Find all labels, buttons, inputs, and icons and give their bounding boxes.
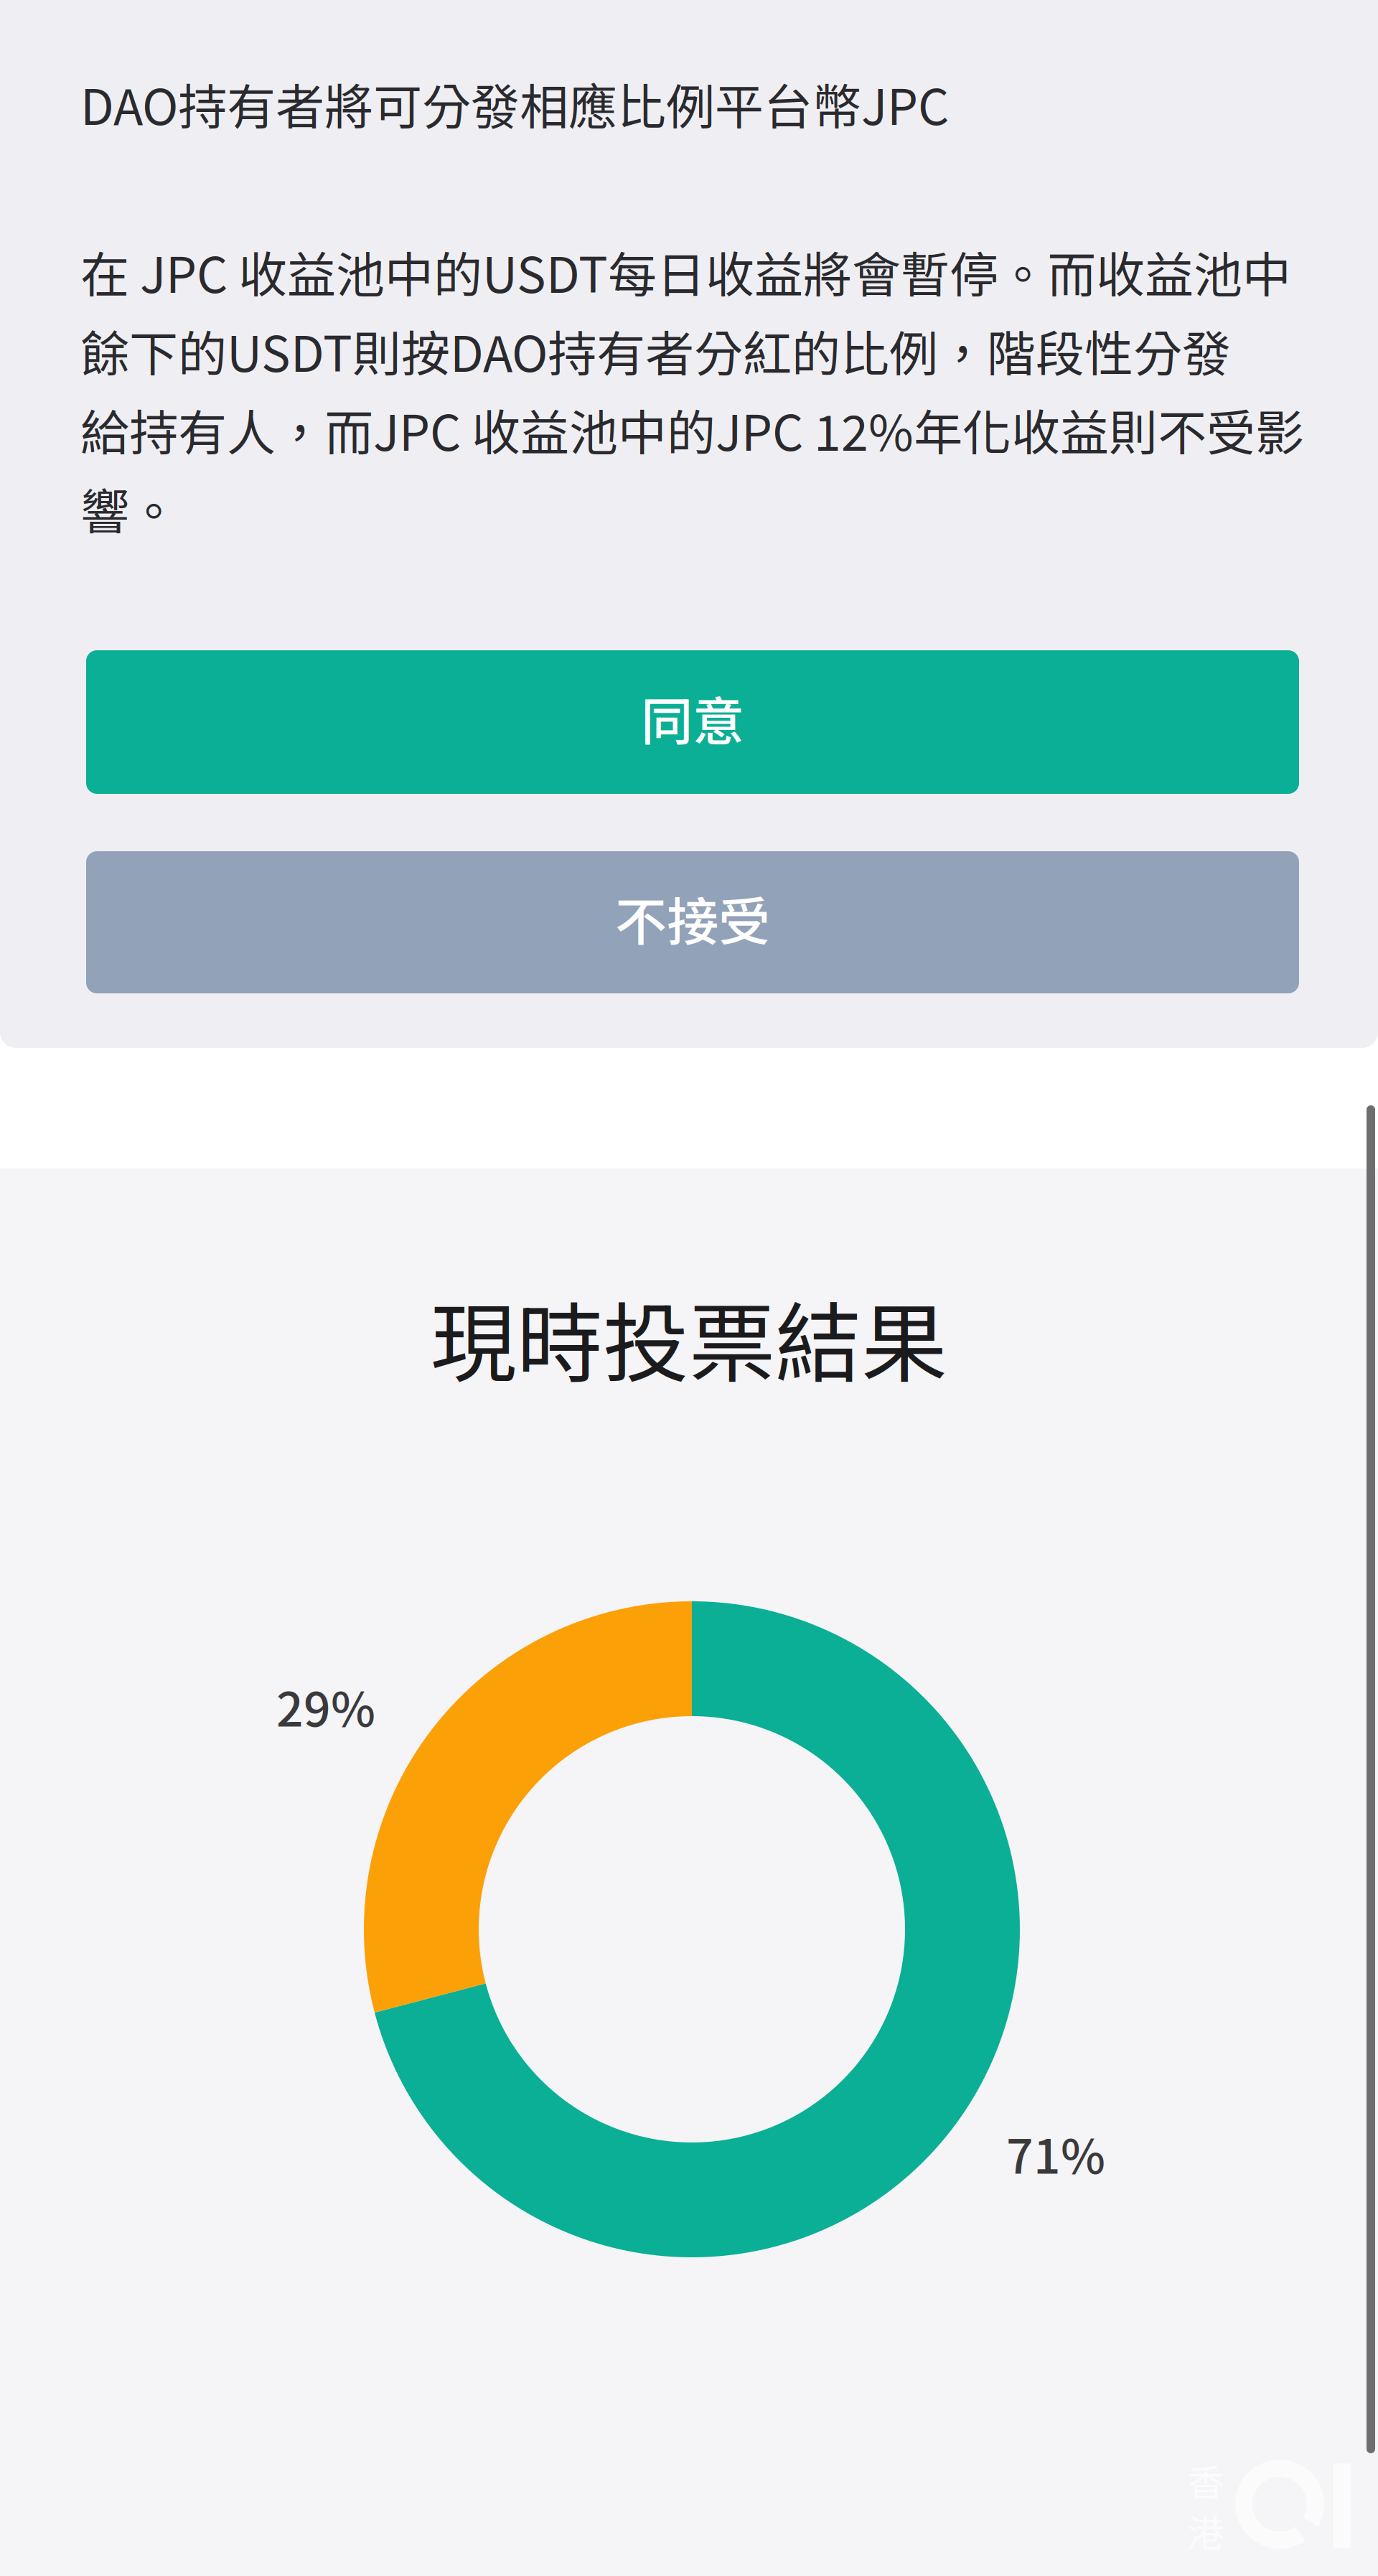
staticText: 現時投票結果 — [431, 1275, 947, 1399]
staticText: DAO持有者將可分發相應比例平台幣JPC — [80, 68, 949, 139]
staticText: 響。 — [80, 473, 178, 544]
staticText: 餘下的USDT則按DAO持有者分紅的比例，階段性分發 — [80, 315, 1231, 386]
staticText: 在 JPC 收益池中的USDT每日收益將會暫停。而收益池中 — [80, 236, 1291, 307]
staticText: 29% — [276, 1672, 375, 1740]
staticText: 同意 — [641, 680, 744, 755]
button[interactable]: 不接受 — [86, 851, 1299, 993]
staticText: 71% — [1006, 2119, 1105, 2187]
staticText: 給持有人，而JPC 收益池中的JPC 12%年化收益則不受影 — [80, 394, 1304, 465]
staticText: 不接受 — [615, 881, 770, 955]
button[interactable]: 同意 — [86, 650, 1299, 794]
